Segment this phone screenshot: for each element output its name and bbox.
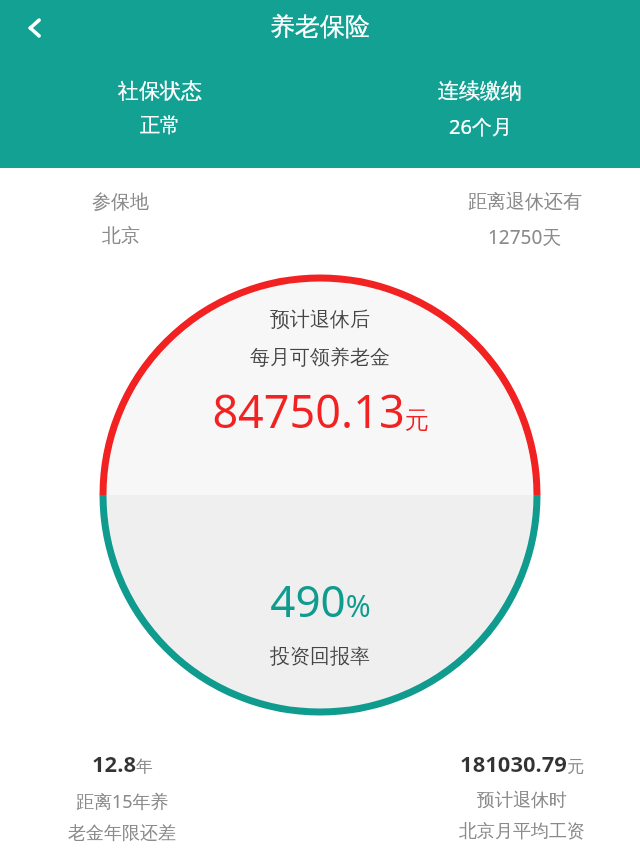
staticText: 连续缴纳 (438, 78, 522, 104)
staticText: 26个月 (449, 113, 512, 140)
staticText: 12.8年 (92, 748, 153, 778)
staticText: 正常 (140, 113, 180, 138)
staticText: 距离15年养 (76, 789, 169, 814)
staticText: 预计退休时 (477, 789, 567, 812)
staticText: 181030.79元 (460, 748, 584, 778)
staticText: 12750天 (488, 224, 562, 250)
staticText: 距离退休还有 (468, 190, 582, 214)
staticText: 北京月平均工资 (459, 820, 585, 843)
staticText: 养老保险 (270, 11, 370, 42)
staticText: 北京 (102, 224, 140, 248)
staticText: 490% (270, 570, 371, 630)
staticText: 每月可领养老金 (250, 345, 390, 370)
staticText: 参保地 (92, 190, 149, 214)
button[interactable]: Back (12, 4, 60, 52)
staticText: 社保状态 (118, 78, 202, 104)
staticText: 老金年限还差 (68, 822, 176, 845)
staticText: 84750.13元 (212, 380, 429, 441)
staticText: 投资回报率 (270, 644, 370, 669)
staticText: 预计退休后 (270, 307, 370, 332)
